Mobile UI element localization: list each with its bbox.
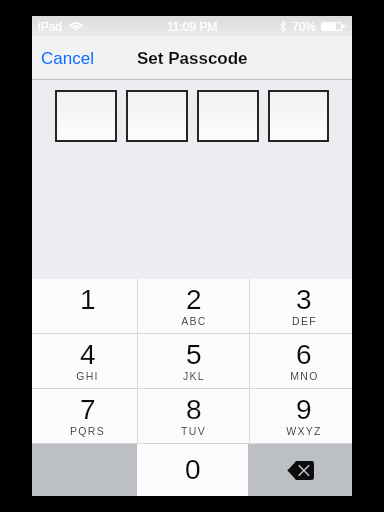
- staticText: WXYZ: [286, 425, 322, 437]
- staticText: iPad: [38, 20, 63, 33]
- staticText: 70%: [292, 20, 317, 33]
- button[interactable]: Passcode digit 4: [270, 92, 327, 140]
- staticText: GHI: [76, 370, 99, 382]
- staticText: Cancel: [41, 49, 94, 68]
- button[interactable]: 3: [250, 279, 352, 333]
- staticText: DEF: [292, 315, 317, 327]
- staticText: Set Passcode: [137, 49, 248, 68]
- staticText: 2: [186, 284, 202, 314]
- button[interactable]: 1: [32, 279, 137, 333]
- staticText: 9: [296, 394, 312, 424]
- staticText: 4: [80, 339, 96, 369]
- button[interactable]: 0: [137, 444, 248, 496]
- staticText: 6: [296, 339, 312, 369]
- staticText: ABC: [181, 315, 207, 327]
- staticText: JKL: [183, 370, 205, 382]
- staticText: PQRS: [70, 425, 105, 437]
- button[interactable]: 9: [250, 389, 352, 443]
- button[interactable]: Passcode digit 3: [199, 92, 257, 140]
- button[interactable]: Passcode digit 2: [128, 92, 186, 140]
- button[interactable]: 2: [138, 279, 249, 333]
- staticText: 8: [186, 394, 202, 424]
- staticText: TUV: [181, 425, 206, 437]
- staticText: 3: [296, 284, 312, 314]
- button[interactable]: 7: [32, 389, 137, 443]
- button[interactable]: Cancel: [37, 41, 98, 76]
- staticText: 11:09 PM: [167, 20, 218, 33]
- button[interactable]: Delete: [248, 444, 352, 496]
- button[interactable]: 6: [250, 334, 352, 388]
- button[interactable]: 4: [32, 334, 137, 388]
- staticText: 0: [185, 454, 201, 485]
- staticText: 1: [80, 284, 96, 314]
- staticText: 7: [80, 394, 96, 424]
- button[interactable]: Passcode digit 1: [57, 92, 115, 140]
- staticText: MNO: [290, 370, 319, 382]
- button[interactable]: 5: [138, 334, 249, 388]
- staticText: 5: [186, 339, 202, 369]
- button[interactable]: 8: [138, 389, 249, 443]
